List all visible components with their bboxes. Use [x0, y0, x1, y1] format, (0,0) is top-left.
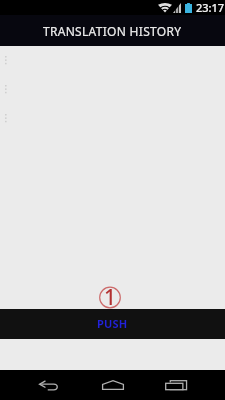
- staticText: TRANSLATION HISTORY: [43, 23, 182, 39]
- staticText: 1: [104, 283, 117, 312]
- staticText: 23:17: [196, 0, 225, 15]
- button[interactable]: Back: [25, 370, 72, 400]
- button[interactable]: Home: [89, 370, 136, 400]
- button[interactable]: Recent apps: [152, 370, 199, 400]
- staticText: PUSH: [97, 316, 128, 331]
- button[interactable]: PUSH: [0, 309, 225, 339]
